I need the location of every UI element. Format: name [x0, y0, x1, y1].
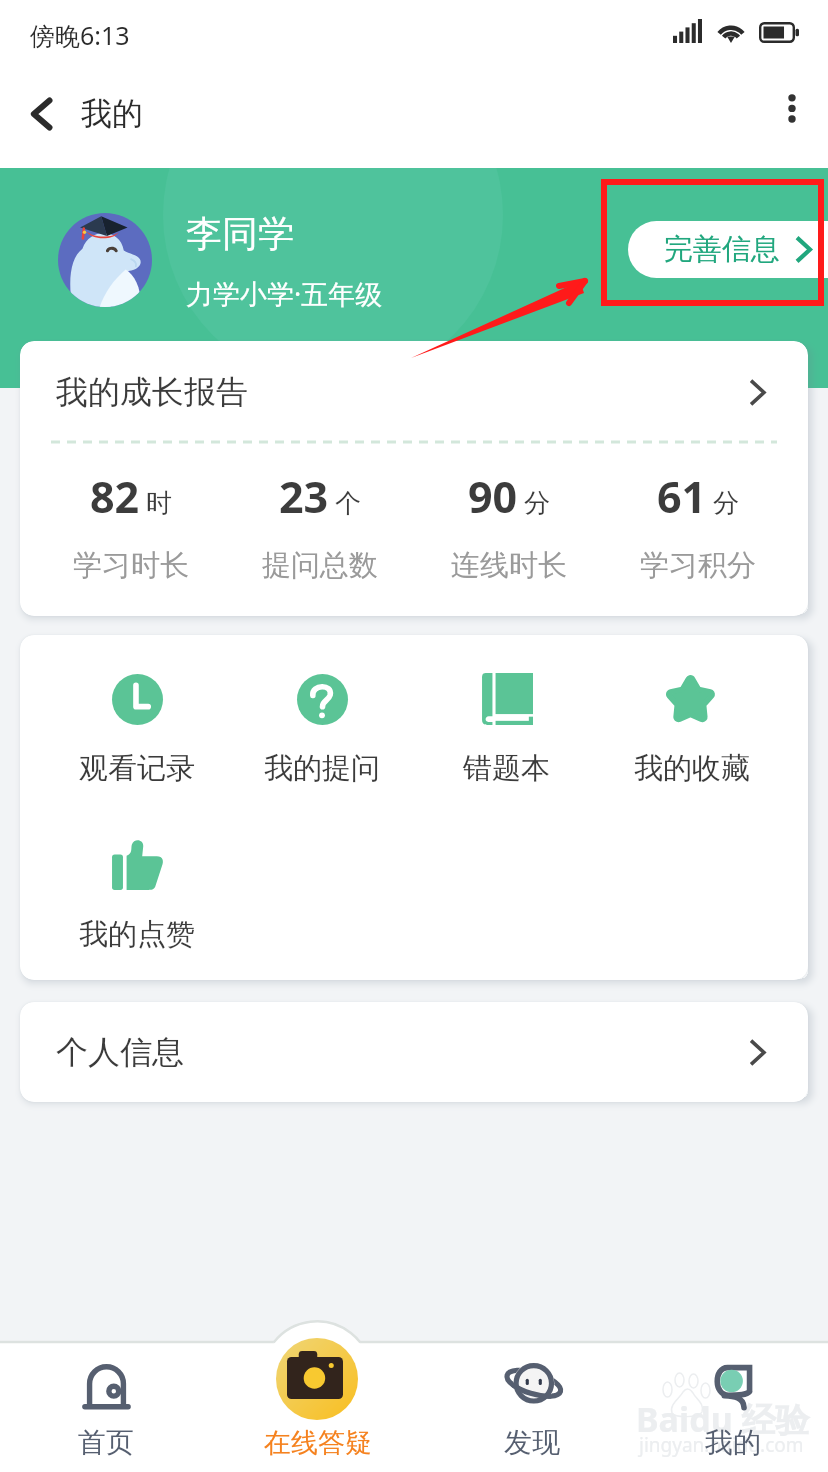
staticText: 个 — [335, 487, 361, 520]
staticText: 学习积分 — [640, 547, 756, 584]
staticText: 错题本 — [463, 750, 550, 787]
staticText: 力学小学·五年级 — [186, 275, 383, 312]
staticText: 时 — [146, 487, 172, 520]
staticText: 我的 — [705, 1425, 761, 1460]
staticText: Baidu 经验 — [636, 1396, 810, 1442]
staticText: 分 — [713, 487, 739, 520]
staticText: 李同学 — [186, 211, 294, 256]
staticText: 82 — [90, 467, 140, 526]
staticText: 61 — [657, 467, 707, 526]
staticText: 我的提问 — [264, 750, 380, 787]
staticText: 在线答疑 — [264, 1426, 372, 1460]
staticText: 连线时长 — [451, 547, 567, 584]
staticText: 提问总数 — [262, 547, 378, 584]
button[interactable]: Back — [12, 84, 72, 144]
staticText: 观看记录 — [79, 750, 195, 787]
staticText: 我的成长报告 — [56, 372, 248, 412]
button[interactable]: 完善信息 — [628, 221, 828, 278]
button[interactable]: 我的收藏 — [599, 673, 784, 787]
button[interactable]: 发现 — [452, 1352, 612, 1470]
staticText: 23 — [279, 467, 329, 526]
button[interactable]: 90 — [414, 467, 603, 584]
button[interactable]: 我的点赞 — [44, 839, 229, 953]
button[interactable]: 我的 — [653, 1352, 813, 1470]
staticText: 个人信息 — [56, 1032, 184, 1072]
button[interactable]: 我的提问 — [229, 673, 414, 787]
button[interactable]: 观看记录 — [44, 673, 229, 787]
button[interactable]: 错题本 — [414, 673, 599, 787]
staticText: jingyan.baidu.com — [639, 1432, 804, 1458]
staticText: 傍晚6:13 — [30, 18, 130, 52]
button[interactable]: 我的成长报告 — [20, 341, 808, 443]
staticText: 完善信息 — [664, 231, 780, 268]
staticText: 发现 — [504, 1425, 560, 1460]
staticText: 我的收藏 — [634, 750, 750, 787]
button[interactable]: 82 — [36, 467, 225, 584]
staticText: 学习时长 — [73, 547, 189, 584]
staticText: 我的点赞 — [79, 916, 195, 953]
button[interactable]: 首页 — [26, 1352, 186, 1470]
staticText: 分 — [524, 487, 550, 520]
button[interactable]: 在线答疑 camera — [276, 1338, 358, 1420]
button[interactable]: 在线答疑 — [248, 1420, 388, 1466]
button[interactable]: 个人信息 — [20, 1002, 808, 1102]
button[interactable]: 23 — [225, 467, 414, 584]
staticText: 我的 — [81, 94, 143, 133]
button[interactable]: 61 — [603, 467, 792, 584]
staticText: 首页 — [78, 1425, 134, 1460]
button[interactable]: More options — [762, 80, 822, 140]
staticText: 90 — [468, 467, 518, 526]
